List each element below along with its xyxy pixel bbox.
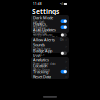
staticText: PRIVACY [33,53,45,57]
staticText: Dark Mode [33,15,53,20]
button[interactable]: Tracking [31,69,69,74]
staticText: Auto Updates [33,27,56,32]
button[interactable]: Dark Mode [31,15,69,21]
staticText: > [65,37,67,42]
staticText: > [65,74,67,79]
staticText: Default tone [33,47,51,51]
staticText: Allow Alerts [33,37,55,42]
button[interactable]: Allow Alerts [31,37,69,42]
button[interactable]: Sounds [31,42,69,48]
staticText: Analytics [33,57,49,62]
staticText: Share usage data [33,62,55,66]
staticText: Badge App Icon [33,48,52,59]
staticText: Settings [32,7,59,16]
button[interactable]: Badge App Icon [31,48,69,53]
staticText: > [65,59,67,64]
staticText: Sounds [33,42,45,47]
staticText: Tracking [33,69,48,74]
staticText: NOTIFICATIONS [33,33,52,37]
button[interactable]: Location [31,63,69,69]
button[interactable]: Haptics [31,21,69,27]
staticText: Vibration feedback [33,26,46,33]
staticText: > [65,65,67,70]
staticText: > [65,44,67,49]
staticText: Reset Data [33,74,51,79]
staticText: 11:48 [33,2,42,6]
staticText: While Using [33,68,50,72]
staticText: Haptics [33,21,46,26]
staticText: Use dark appearance [33,20,48,27]
button[interactable]: Reset Data [31,74,69,79]
button[interactable]: Analytics [31,57,69,63]
staticText: Download updates over Wi-Fi only [33,32,58,43]
button[interactable]: Auto Updates [31,27,69,33]
staticText: On [60,38,64,41]
staticText: •ıl [60,2,63,6]
staticText: Location [33,63,47,68]
